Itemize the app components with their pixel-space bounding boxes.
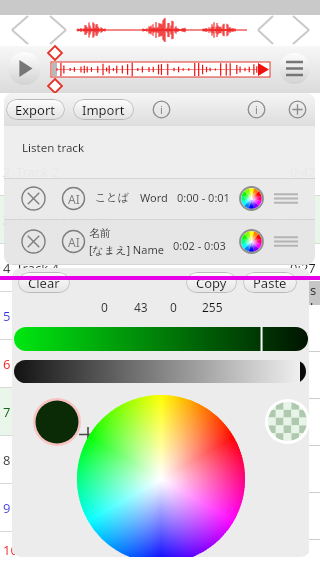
staticText: Acquaintance: [199, 212, 276, 228]
staticText: 0: [170, 299, 177, 315]
staticText: 10: [3, 541, 18, 559]
button[interactable]: 10: [0, 532, 320, 568]
button[interactable]: 4: [0, 244, 320, 291]
staticText: 0: [101, 299, 108, 315]
staticText: 4: [3, 259, 11, 277]
button[interactable]: Reorder: [274, 186, 298, 211]
button[interactable]: Menu: [279, 53, 310, 84]
button[interactable]: Add: [288, 100, 307, 119]
staticText: 0:28: [290, 307, 316, 325]
button[interactable]: Info: [247, 100, 266, 119]
button[interactable]: Info: [152, 100, 171, 119]
button[interactable]: AI: [61, 229, 86, 254]
button[interactable]: Current colour: [33, 398, 81, 446]
staticText: AI: [68, 234, 80, 250]
button[interactable]: Import: [73, 99, 134, 120]
staticText: Track 2: [16, 163, 59, 181]
staticText: Export: [15, 101, 56, 119]
staticText: 名前: [89, 226, 111, 240]
staticText: Track 6: [23, 541, 66, 559]
staticText: Import: [82, 101, 125, 119]
button[interactable]: Copy: [186, 272, 237, 293]
staticText: 1:21: [290, 211, 316, 229]
staticText: 1:21: [290, 403, 316, 421]
staticText: 0:02 - 0:03: [173, 238, 226, 253]
button[interactable]: AI: [61, 186, 86, 211]
button[interactable]: 6: [0, 340, 320, 387]
staticText: 3: [3, 211, 11, 229]
staticText: 43: [134, 299, 148, 315]
staticText: 255: [202, 299, 223, 315]
staticText: Name ...: [229, 500, 276, 516]
button[interactable]: Delete cue: [21, 229, 46, 254]
button[interactable]: 7: [0, 388, 320, 435]
button[interactable]: Export: [6, 99, 65, 120]
staticText: 9: [3, 499, 11, 517]
button[interactable]: 9: [0, 484, 320, 531]
staticText: Track 4: [16, 259, 59, 277]
button[interactable]: 2: [0, 148, 320, 195]
button[interactable]: 3: [0, 196, 320, 243]
staticText: 0:45: [290, 355, 316, 373]
button[interactable]: Colour: [239, 229, 264, 254]
staticText: Copy: [196, 274, 227, 292]
staticText: i: [160, 102, 163, 117]
staticText: 0:27: [290, 259, 316, 277]
staticText: Track 3 Lesson 1: [16, 403, 116, 421]
button[interactable]: Clear: [18, 272, 70, 293]
button[interactable]: Transparent: [265, 399, 310, 444]
staticText: Track 6: [16, 355, 59, 373]
button[interactable]: Alpha channel: [14, 360, 306, 383]
staticText: 8: [3, 451, 11, 469]
button[interactable]: Play: [8, 52, 41, 85]
staticText: Track 3 Lesson 1: [16, 211, 116, 229]
button[interactable]: 5: [0, 292, 320, 339]
staticText: Paste: [253, 274, 287, 292]
staticText: sh: [310, 281, 320, 305]
button[interactable]: Reorder: [274, 229, 298, 254]
staticText: 0:00 - 0:01: [177, 190, 230, 205]
staticText: Word: [140, 190, 168, 205]
staticText: ことば: [95, 190, 129, 204]
staticText: 7: [3, 403, 11, 421]
staticText: Clear: [28, 274, 60, 292]
staticText: 2: [3, 163, 11, 181]
button[interactable]: Delete cue: [21, 186, 46, 211]
staticText: AI: [68, 191, 80, 207]
staticText: 0:27: [290, 451, 316, 469]
staticText: Acquaintance: [199, 404, 276, 420]
button[interactable]: Colour wheel: [12, 268, 310, 557]
staticText: 0:45: [290, 541, 316, 559]
button[interactable]: [4, 179, 315, 219]
button[interactable]: Waveform: [46, 46, 275, 93]
staticText: Listen track: [22, 140, 85, 156]
button[interactable]: Overview: [0, 15, 320, 46]
button[interactable]: 8: [0, 436, 320, 483]
button[interactable]: Green channel: [14, 327, 308, 351]
button[interactable]: [4, 220, 315, 264]
staticText: 0:42: [290, 163, 316, 181]
staticText: 5: [3, 307, 11, 325]
staticText: 6: [3, 355, 11, 373]
staticText: i: [255, 102, 258, 117]
staticText: 0:28: [290, 499, 316, 517]
staticText: [なまえ] Name: [89, 242, 164, 257]
button[interactable]: Colour: [239, 186, 264, 211]
button[interactable]: Paste: [243, 272, 297, 293]
